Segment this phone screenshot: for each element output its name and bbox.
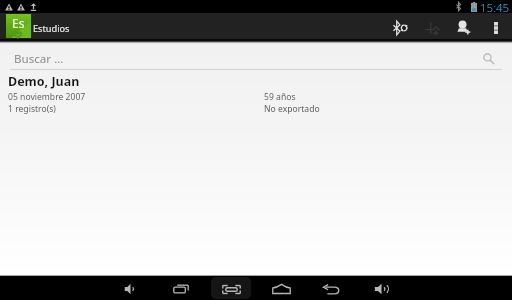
- button[interactable]: Add patient: [448, 13, 480, 43]
- button[interactable]: Recents: [157, 276, 205, 300]
- button[interactable]: Home: [257, 276, 305, 300]
- button[interactable]: Volume down: [106, 276, 154, 300]
- button[interactable]: Buscar ...: [10, 45, 502, 70]
- button[interactable]: Volume up: [357, 276, 405, 300]
- button[interactable]: Bluetooth sync: [384, 13, 416, 43]
- staticText: Demo, Juan: [8, 73, 80, 90]
- button[interactable]: Back: [307, 276, 355, 300]
- button[interactable]: Screenshot: [207, 276, 255, 300]
- staticText: Es: [12, 15, 25, 31]
- staticText: Estudios: [33, 22, 70, 35]
- staticText: Buscar ...: [14, 51, 64, 67]
- staticText: No exportado: [264, 103, 320, 115]
- staticText: 59 años: [264, 91, 296, 103]
- button[interactable]: More options: [480, 13, 512, 43]
- staticText: 1 registro(s): [8, 103, 56, 115]
- staticText: 15:45: [480, 0, 510, 13]
- button[interactable]: Demo, Juan: [0, 70, 512, 113]
- staticText: 05 noviembre 2007: [8, 91, 86, 103]
- button[interactable]: New study: [416, 13, 448, 43]
